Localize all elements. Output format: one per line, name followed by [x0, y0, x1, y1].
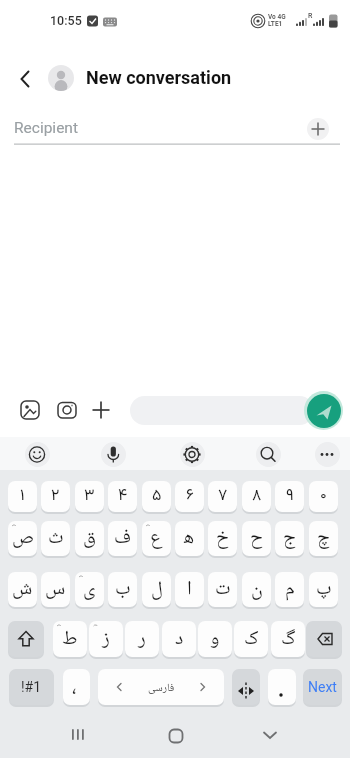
button[interactable]: ی — [75, 572, 104, 607]
staticText: و — [210, 626, 220, 653]
staticText: ۴ — [118, 484, 128, 509]
staticText: پ — [316, 576, 332, 603]
button[interactable] — [256, 442, 281, 467]
button[interactable] — [307, 394, 341, 428]
button[interactable]: ق — [75, 521, 104, 556]
button[interactable] — [10, 64, 40, 94]
button[interactable]: ر — [125, 621, 159, 657]
staticText: س — [45, 576, 66, 603]
button[interactable]: ث — [41, 521, 70, 556]
button[interactable] — [268, 669, 296, 705]
button[interactable]: ، — [63, 669, 90, 705]
button[interactable] — [8, 621, 44, 657]
button[interactable]: ﻫ — [175, 521, 204, 556]
button[interactable]: Next — [303, 669, 342, 705]
staticText: ش — [12, 576, 33, 603]
button[interactable]: س — [41, 572, 70, 607]
button[interactable]: ج — [275, 521, 304, 556]
staticText: ﻫ — [184, 525, 195, 552]
button[interactable]: ۱ — [8, 481, 37, 512]
staticText: LTE1 — [268, 20, 283, 28]
staticText: ۵ — [152, 484, 162, 509]
button[interactable]: ۳ — [75, 481, 104, 512]
button[interactable]: چ — [309, 521, 338, 556]
button[interactable]: خ — [208, 521, 237, 556]
button[interactable]: فارسی — [98, 669, 224, 705]
button[interactable]: ع — [142, 521, 171, 556]
staticText: د — [175, 626, 184, 653]
staticText: خ — [216, 525, 229, 552]
button[interactable]: ۷ — [208, 481, 237, 512]
staticText: گ — [281, 626, 296, 653]
staticText: ج — [283, 525, 296, 552]
staticText: ی — [83, 576, 96, 603]
button[interactable] — [240, 715, 300, 755]
staticText: Recipient — [14, 119, 78, 137]
staticText: ۹ — [286, 484, 294, 509]
button[interactable]: ف — [108, 521, 137, 556]
staticText: ص — [12, 525, 34, 552]
staticText: ق — [83, 525, 96, 552]
staticText: !#1 — [21, 679, 42, 695]
button[interactable]: New conversation — [86, 67, 232, 88]
staticText: ۲ — [51, 484, 60, 509]
button[interactable]: و — [198, 621, 232, 657]
button[interactable] — [315, 442, 340, 467]
staticText: ، — [72, 674, 77, 703]
button[interactable] — [180, 442, 205, 467]
staticText: چ — [317, 525, 330, 552]
button[interactable]: ط — [53, 621, 87, 657]
button[interactable] — [48, 65, 74, 91]
staticText: 10:55 — [50, 13, 82, 28]
button[interactable]: د — [162, 621, 196, 657]
button[interactable] — [48, 715, 108, 755]
button[interactable] — [306, 621, 342, 657]
button[interactable]: گ — [271, 621, 305, 657]
staticText: ث — [48, 525, 64, 552]
button[interactable]: ۸ — [242, 481, 271, 512]
staticText: ۸ — [252, 484, 262, 509]
button[interactable]: ت — [208, 572, 237, 607]
staticText: ح — [250, 525, 263, 552]
button[interactable]: ل — [142, 572, 171, 607]
button[interactable]: پ — [309, 572, 338, 607]
button[interactable] — [232, 669, 260, 705]
staticText: م — [285, 576, 295, 603]
staticText: ط — [62, 626, 78, 653]
button[interactable]: م — [275, 572, 304, 607]
staticText: ۶ — [186, 484, 194, 509]
staticText: Vo 4G — [268, 13, 286, 21]
staticText: ۷ — [218, 484, 228, 509]
button[interactable]: ا — [175, 572, 204, 607]
button[interactable] — [25, 442, 50, 467]
staticText: R — [308, 12, 313, 20]
staticText: ل — [151, 576, 163, 603]
button[interactable] — [101, 442, 126, 467]
button[interactable]: ز — [89, 621, 123, 657]
button[interactable] — [143, 715, 203, 755]
staticText: ن — [251, 576, 263, 603]
button[interactable]: ب — [108, 572, 137, 607]
staticText: ع — [150, 525, 163, 552]
button[interactable]: ۵ — [142, 481, 171, 512]
button[interactable]: ک — [234, 621, 268, 657]
staticText: ا — [187, 576, 192, 603]
button[interactable] — [130, 396, 314, 425]
staticText: Next — [308, 679, 337, 695]
button[interactable] — [0, 110, 350, 146]
staticText: ۱ — [20, 484, 25, 509]
button[interactable]: ح — [242, 521, 271, 556]
button[interactable]: ۴ — [108, 481, 137, 512]
staticText: ب — [115, 576, 131, 603]
button[interactable]: ن — [242, 572, 271, 607]
staticText: ز — [102, 626, 110, 653]
button[interactable]: !#1 — [9, 669, 54, 705]
button[interactable]: ۰ — [309, 481, 338, 512]
button[interactable]: ۲ — [41, 481, 70, 512]
button[interactable]: ۶ — [175, 481, 204, 512]
button[interactable]: ۹ — [275, 481, 304, 512]
staticText: فارسی — [148, 680, 175, 695]
button[interactable]: ص — [8, 521, 37, 556]
staticText: ر — [138, 626, 146, 653]
button[interactable]: ش — [8, 572, 37, 607]
